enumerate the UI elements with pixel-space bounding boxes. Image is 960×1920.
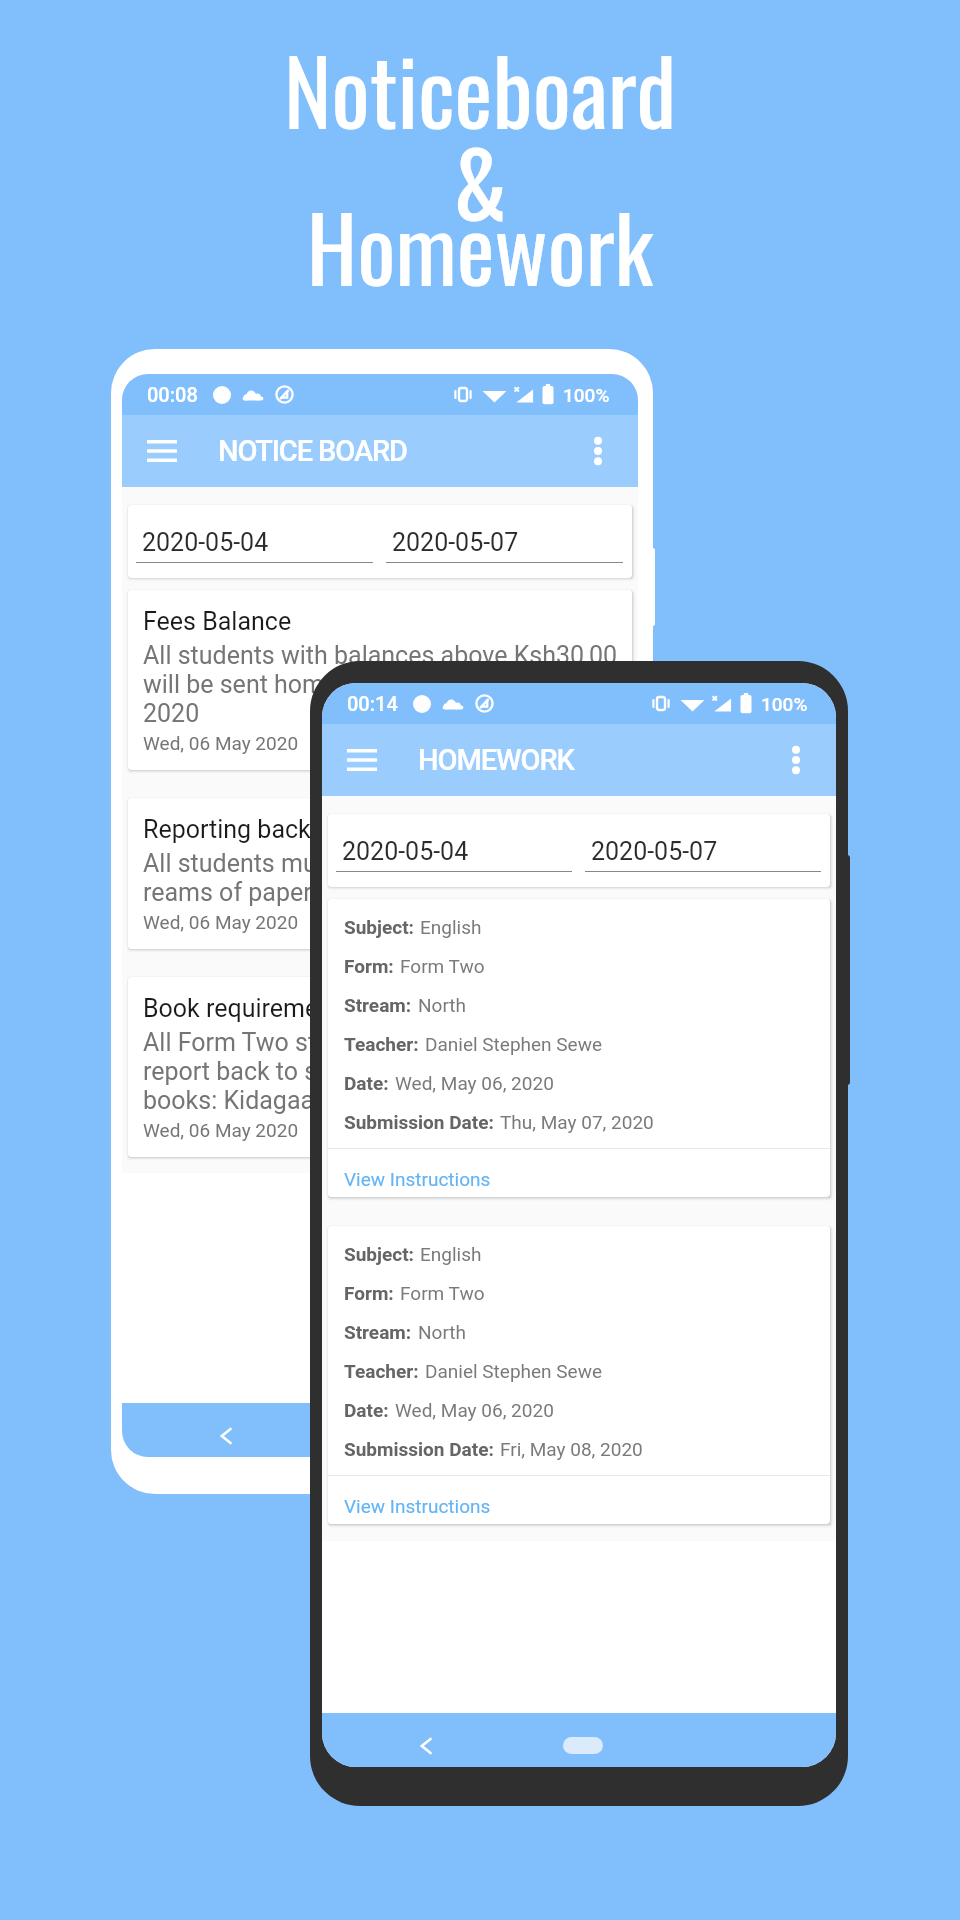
staticText: Subject:	[344, 916, 414, 938]
staticText: Reporting back	[143, 815, 311, 844]
staticText: Book requirements	[143, 994, 354, 1023]
staticText: Fees Balance	[143, 607, 292, 636]
button[interactable]: 2020-05-04	[136, 528, 373, 563]
staticText: 00:08	[147, 383, 198, 406]
button[interactable]: 2020-05-07	[386, 528, 623, 563]
staticText: 00:14	[347, 692, 398, 715]
button[interactable]: Reporting back	[128, 798, 632, 949]
staticText: 100%	[563, 384, 610, 406]
staticText: Homework	[0, 179, 960, 312]
staticText: View Instructions	[344, 1168, 491, 1190]
staticText: Stream:	[344, 1321, 412, 1343]
staticText: 100%	[761, 693, 808, 715]
staticText: Form:	[344, 1282, 394, 1304]
button[interactable]: View Instructions	[328, 1476, 830, 1524]
staticText: Wed, May 06, 2020	[395, 1399, 554, 1421]
button[interactable]: Book requirements	[128, 977, 632, 1157]
staticText: Thu, May 07, 2020	[500, 1111, 654, 1133]
button[interactable]: Back	[405, 1725, 447, 1767]
staticText: Date:	[344, 1399, 389, 1421]
staticText: Date:	[344, 1072, 389, 1094]
staticText: 2020-05-04	[142, 528, 269, 557]
button[interactable]: View Instructions	[328, 1149, 830, 1197]
staticText: Fri, May 08, 2020	[500, 1438, 643, 1460]
staticText: Daniel Stephen Sewe	[425, 1360, 603, 1382]
staticText: View Instructions	[344, 1495, 491, 1517]
button[interactable]: Back	[205, 1415, 247, 1457]
staticText: Wed, May 06, 2020	[395, 1072, 554, 1094]
staticText: 2020-05-07	[591, 837, 718, 866]
staticText: Subject:	[344, 1243, 414, 1265]
staticText: English	[420, 916, 482, 938]
staticText: All Form Two students should report back…	[143, 1028, 500, 1115]
button[interactable]: More options	[574, 427, 622, 475]
staticText: Submission Date:	[344, 1438, 494, 1460]
staticText: Stream:	[344, 994, 412, 1016]
staticText: North	[418, 1321, 466, 1343]
staticText: 2020-05-04	[342, 837, 469, 866]
staticText: Wed, 06 May 2020	[143, 911, 299, 933]
staticText: HOMEWORK	[418, 743, 574, 777]
staticText: 2020-05-07	[392, 528, 519, 557]
staticText: Form:	[344, 955, 394, 977]
staticText: &	[0, 114, 960, 247]
button[interactable]: Open navigation menu	[338, 736, 386, 784]
staticText: Form Two	[400, 955, 485, 977]
staticText: North	[418, 994, 466, 1016]
staticText: Wed, 06 May 2020	[143, 1119, 299, 1141]
button[interactable]: Home	[364, 1427, 404, 1444]
staticText: Submission Date:	[344, 1111, 494, 1133]
staticText: Wed, 06 May 2020	[143, 732, 299, 754]
button[interactable]: 2020-05-07	[585, 837, 821, 872]
staticText: All students with balances above Ksh30,0…	[143, 641, 618, 728]
staticText: Form Two	[400, 1282, 485, 1304]
button[interactable]: 2020-05-04	[336, 837, 572, 872]
staticText: English	[420, 1243, 482, 1265]
staticText: NOTICE BOARD	[218, 434, 407, 468]
staticText: Noticeboard	[0, 22, 960, 155]
staticText: All students must bring back two reams o…	[143, 849, 508, 907]
button[interactable]: Open navigation menu	[138, 427, 186, 475]
staticText: Daniel Stephen Sewe	[425, 1033, 603, 1055]
staticText: Teacher:	[344, 1033, 419, 1055]
button[interactable]: Home	[563, 1737, 603, 1754]
button[interactable]: Fees Balance	[128, 590, 632, 770]
button[interactable]: More options	[772, 736, 820, 784]
staticText: Teacher:	[344, 1360, 419, 1382]
